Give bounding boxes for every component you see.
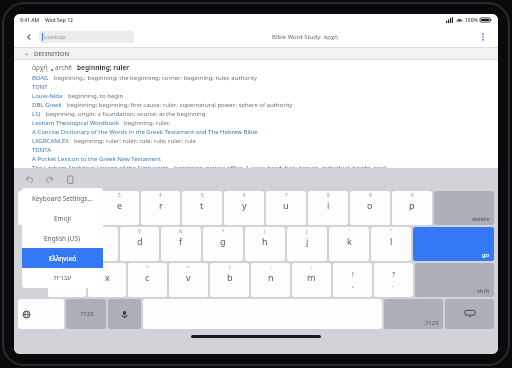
- staticText: beginning; beginning; first cause; ruler…: [67, 101, 293, 109]
- button[interactable]: &: [161, 227, 201, 261]
- staticText: Lexham Theological Wordbook: [32, 119, 119, 127]
- button[interactable]: DEFINITION: [14, 48, 498, 60]
- button[interactable]: *: [203, 227, 243, 261]
- button[interactable]: 1: [18, 191, 57, 225]
- button[interactable]: Lookup: [39, 31, 134, 43]
- button[interactable]: 0: [392, 191, 432, 225]
- staticText: beginning.; beginning; the beginning; co…: [54, 74, 258, 82]
- button[interactable]: #: [79, 227, 118, 261]
- button[interactable]: Redo: [44, 174, 55, 185]
- staticText: q: [35, 199, 41, 211]
- button[interactable]: 4: [141, 191, 180, 225]
- button[interactable]: :: [251, 263, 290, 297]
- button[interactable]: TDNTA: [32, 146, 492, 154]
- button[interactable]: ": [371, 227, 411, 261]
- button[interactable]: ): [287, 227, 327, 261]
- button[interactable]: ! ,: [333, 263, 372, 297]
- staticText: ": [390, 228, 392, 234]
- button[interactable]: Louw-Nida: [32, 92, 492, 100]
- staticText: 100%: [465, 17, 478, 24]
- staticText: BDAG: [32, 74, 49, 82]
- button[interactable]: Ελληνικά: [22, 248, 103, 268]
- button[interactable]: Paste: [64, 174, 75, 185]
- button[interactable]: 3: [100, 191, 139, 225]
- button[interactable]: TDNT: [32, 83, 492, 91]
- button[interactable]: (: [245, 227, 285, 261]
- staticText: .?123: [79, 310, 94, 318]
- staticText: 7: [285, 192, 288, 198]
- button[interactable]: English (US): [22, 228, 103, 248]
- staticText: ): [306, 228, 308, 234]
- button[interactable]: LSJ: [32, 110, 492, 118]
- button[interactable]: Undo: [24, 174, 35, 185]
- staticText: *: [222, 228, 225, 234]
- button[interactable]: DBL Greek: [32, 101, 492, 109]
- staticText: Lookup: [44, 33, 66, 41]
- staticText: LXGRCANLEX: [32, 137, 69, 145]
- button[interactable]: 8: [308, 191, 348, 225]
- staticText: 6: [243, 192, 246, 198]
- button[interactable]: 6: [224, 191, 264, 225]
- button[interactable]: +: [128, 263, 167, 297]
- staticText: p: [409, 199, 415, 211]
- button[interactable]: $: [120, 227, 159, 261]
- button[interactable]: A Pocket Lexicon to the Greek New Testam…: [32, 155, 492, 163]
- staticText: 0: [411, 192, 414, 198]
- button[interactable]: ? .: [374, 263, 413, 297]
- staticText: Emoji: [54, 214, 71, 223]
- button[interactable]: -: [88, 263, 126, 297]
- button[interactable]: shift: [415, 263, 494, 297]
- button[interactable]: Dictate: [108, 299, 141, 329]
- staticText: go: [482, 251, 490, 259]
- button[interactable]: A Concise Dictionary of the Words in the…: [32, 128, 492, 136]
- button[interactable]: ;: [292, 263, 331, 297]
- staticText: beginning; power; office; 1 ש׳ש׳; head; …: [174, 164, 389, 168]
- button[interactable]: 7: [266, 191, 306, 225]
- button[interactable]: Lexham Theological Wordbook: [32, 119, 492, 127]
- staticText: c: [145, 271, 150, 283]
- staticText: o: [367, 199, 373, 211]
- staticText: $: [138, 228, 141, 234]
- button[interactable]: Back: [22, 30, 36, 44]
- staticText: :: [270, 264, 272, 270]
- staticText: 9: [369, 192, 372, 198]
- button[interactable]: LXGRCANLEX: [32, 137, 492, 145]
- staticText: d: [137, 235, 143, 247]
- button[interactable]: delete: [434, 191, 494, 225]
- button[interactable]: =: [169, 263, 208, 297]
- staticText: Wed Sep 12: [45, 17, 73, 24]
- staticText: ἀρχή: [32, 63, 48, 72]
- button[interactable]: ': [329, 227, 369, 261]
- button[interactable]: @: [38, 227, 77, 261]
- button[interactable]: go: [413, 227, 494, 261]
- button[interactable]: 2: [59, 191, 98, 225]
- staticText: beginning; ruler; ruler; rule; rule; rul…: [74, 137, 196, 145]
- staticText: ? .: [392, 270, 396, 290]
- button[interactable]: Switch keyboard: [18, 299, 64, 329]
- button[interactable]: %: [48, 263, 86, 297]
- button[interactable]: .?123: [66, 299, 106, 329]
- button[interactable]: .?123: [384, 299, 443, 329]
- button[interactable]: /: [210, 263, 249, 297]
- button[interactable]: The Lexham Analytical Lexicon of the Sep…: [32, 164, 492, 168]
- button[interactable]: Emoji: [22, 208, 103, 228]
- staticText: DEFINITION: [34, 50, 70, 58]
- button[interactable]: 9: [350, 191, 390, 225]
- staticText: beginning; ruler: [77, 63, 130, 72]
- button[interactable]: עברית: [22, 268, 103, 288]
- staticText: TDNT: [32, 83, 48, 91]
- staticText: 8: [327, 192, 330, 198]
- button[interactable]: Keyboard Settings...: [22, 188, 103, 208]
- button[interactable]: 5: [182, 191, 222, 225]
- staticText: h: [262, 235, 268, 247]
- staticText: ! ,: [352, 270, 354, 290]
- staticText: n: [268, 271, 274, 283]
- button[interactable]: BDAG: [32, 74, 492, 82]
- button[interactable]: Hide keyboard: [445, 299, 494, 329]
- staticText: b: [227, 271, 233, 283]
- button[interactable]: More options: [476, 30, 490, 44]
- staticText: beginning, to begin: [68, 92, 124, 100]
- staticText: shift: [477, 287, 490, 295]
